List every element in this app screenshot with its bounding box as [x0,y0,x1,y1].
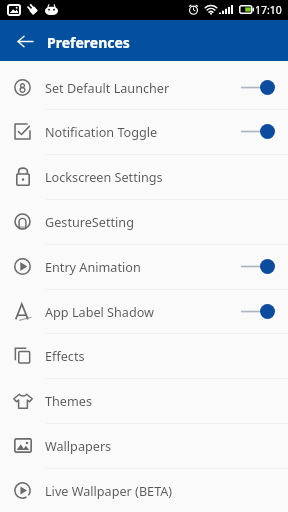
staticText: Wallpapers [45,437,112,454]
button[interactable]: Back [0,20,46,61]
staticText: GestureSetting [45,213,134,230]
button[interactable]: Lockscreen Settings [0,154,288,199]
button[interactable]: Wallpapers [0,423,288,468]
button[interactable]: GestureSetting [0,199,288,244]
button[interactable]: App Label Shadow [0,289,288,334]
staticText: Themes [45,392,92,409]
staticText: App Label Shadow [45,303,155,320]
staticText: Lockscreen Settings [45,168,163,185]
staticText: Effects [45,347,85,364]
button[interactable]: Notification Toggle [0,109,288,154]
staticText: Notification Toggle [45,123,158,140]
staticText: Preferences [47,33,130,52]
staticText: 17:10 [255,3,282,17]
button[interactable]: Effects [0,333,288,378]
staticText: Set Default Launcher [45,79,170,96]
button[interactable]: Themes [0,378,288,423]
button[interactable]: Live Wallpaper (BETA) [0,468,288,512]
staticText: Live Wallpaper (BETA) [45,482,173,499]
button[interactable]: Entry Animation [0,244,288,289]
button[interactable]: Set Default Launcher [0,65,288,110]
staticText: Entry Animation [45,258,141,275]
